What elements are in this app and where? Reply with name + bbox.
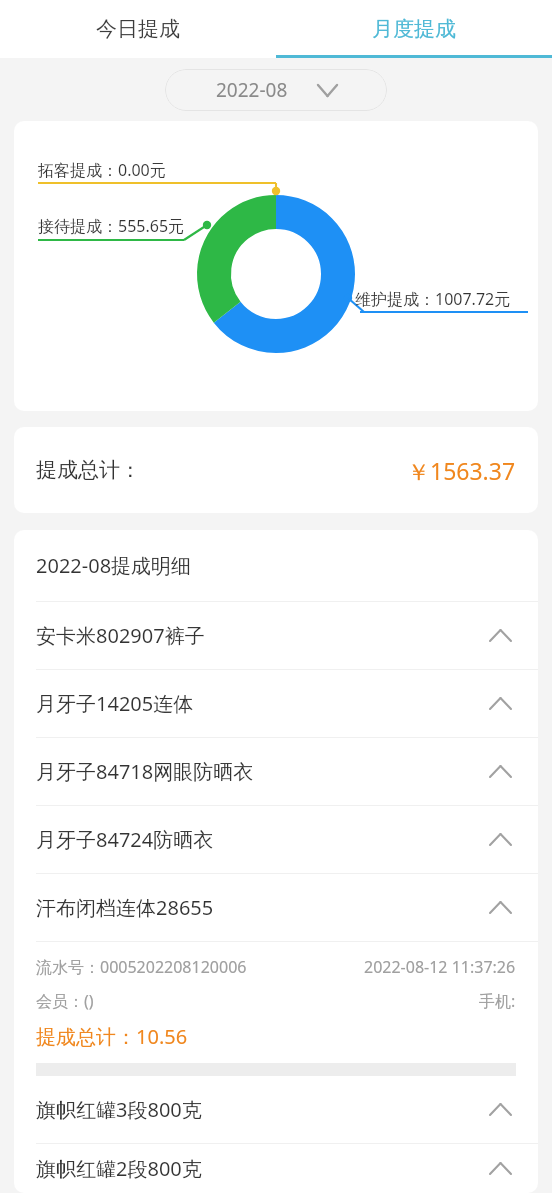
staticText: 2022-08-12 11:37:26: [364, 956, 516, 978]
button[interactable]: 旗帜红罐3段800克: [14, 1076, 538, 1143]
staticText: 旗帜红罐3段800克: [36, 1096, 202, 1123]
button[interactable]: 2022-08: [165, 69, 387, 111]
staticText: 旗帜红罐2段800克: [36, 1155, 202, 1182]
staticText: 提成总计：10.56: [36, 1023, 188, 1050]
other: Collapse: [490, 630, 511, 641]
staticText: 月牙子14205连体: [36, 690, 194, 717]
other: Collapse: [490, 766, 511, 777]
staticText: 拓客提成：0.00元: [38, 159, 166, 181]
button[interactable]: 月度提成: [276, 0, 552, 58]
staticText: 2022-08提成明细: [36, 552, 192, 579]
button[interactable]: 月牙子14205连体: [14, 670, 538, 737]
staticText: 接待提成：555.65元: [38, 215, 185, 237]
staticText: 今日提成: [96, 16, 180, 42]
staticText: 月牙子84718网眼防晒衣: [36, 758, 254, 785]
button[interactable]: 今日提成: [0, 0, 276, 58]
button[interactable]: 月牙子84718网眼防晒衣: [14, 738, 538, 805]
staticText: 月度提成: [372, 16, 456, 42]
staticText: 手机:: [479, 990, 516, 1012]
other: Collapse: [490, 1104, 511, 1115]
staticText: 2022-08: [216, 77, 288, 103]
staticText: 提成总计：: [36, 457, 141, 483]
staticText: 会员：(): [36, 990, 94, 1012]
button[interactable]: 汗布闭档连体28655: [14, 874, 538, 941]
staticText: 安卡米802907裤子: [36, 622, 205, 649]
staticText: 月牙子84724防晒衣: [36, 826, 214, 853]
other: Collapse: [490, 1163, 511, 1174]
staticText: 汗布闭档连体28655: [36, 894, 214, 921]
other: Collapse: [490, 698, 511, 709]
button[interactable]: 安卡米802907裤子: [14, 602, 538, 669]
staticText: 流水号：0005202208120006: [36, 956, 247, 978]
staticText: 维护提成：1007.72元: [355, 288, 511, 310]
button[interactable]: 月牙子84724防晒衣: [14, 806, 538, 873]
other: Collapse: [490, 834, 511, 845]
staticText: ￥1563.37: [407, 455, 516, 486]
other: Collapse: [490, 902, 511, 913]
button[interactable]: 旗帜红罐2段800克: [14, 1144, 538, 1193]
